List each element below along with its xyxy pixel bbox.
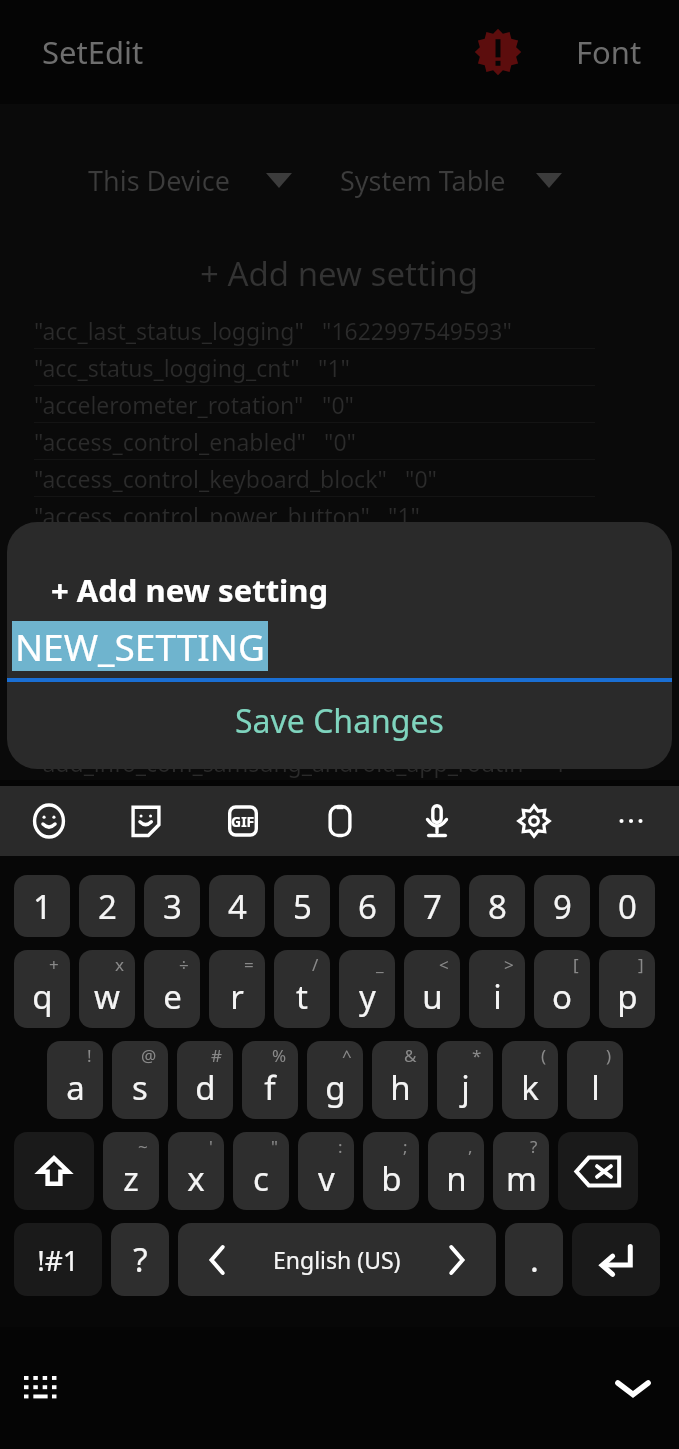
button[interactable]: % <box>242 1041 298 1119</box>
button[interactable]: ~ <box>103 1132 159 1210</box>
staticText: y <box>359 974 376 1019</box>
staticText: ' <box>209 1135 213 1158</box>
button[interactable]: # <box>177 1041 233 1119</box>
staticText: e <box>163 974 182 1019</box>
button[interactable]: Stickers <box>97 786 194 856</box>
button[interactable]: 5 <box>274 875 330 937</box>
button[interactable]: Shift <box>14 1132 94 1210</box>
staticText: > <box>504 953 514 976</box>
button[interactable]: = <box>209 950 265 1028</box>
staticText: "acc_last_status_logging" <box>34 315 304 346</box>
button[interactable]: 4 <box>209 875 265 937</box>
staticText: 1 <box>33 884 52 929</box>
button[interactable]: More options <box>582 786 679 856</box>
button[interactable]: @ <box>112 1041 168 1119</box>
staticText: r <box>230 974 244 1019</box>
button[interactable]: _ <box>339 950 395 1028</box>
staticText: h <box>390 1065 411 1110</box>
staticText: u <box>422 974 443 1019</box>
button[interactable]: 2 <box>79 875 135 937</box>
staticText: !#1 <box>37 1241 79 1279</box>
staticText: 6 <box>358 884 377 929</box>
button[interactable]: GIF <box>194 786 291 856</box>
button[interactable]: ' <box>168 1132 224 1210</box>
button[interactable]: Settings <box>485 786 582 856</box>
button[interactable]: 1 <box>14 875 70 937</box>
button[interactable]: , <box>428 1132 484 1210</box>
button[interactable]: Font <box>576 31 642 73</box>
button[interactable]: 7 <box>404 875 460 937</box>
staticText: "access_control_enabled" <box>34 426 306 457</box>
button[interactable]: + Add new setting <box>0 251 679 296</box>
button[interactable]: 3 <box>144 875 200 937</box>
button[interactable]: : <box>298 1132 354 1210</box>
button[interactable]: NEW_SETTING <box>7 621 672 671</box>
button[interactable]: "access_control_enabled" <box>0 423 679 460</box>
button[interactable]: "access_control_power_button" <box>0 497 679 534</box>
button[interactable]: This Device <box>88 162 292 199</box>
staticText: . <box>530 1237 539 1282</box>
staticText: ? <box>133 1237 148 1282</box>
staticText: 3 <box>163 884 182 929</box>
button[interactable]: ^ <box>307 1041 363 1119</box>
button[interactable]: [ <box>534 950 590 1028</box>
button[interactable]: Change keyboard <box>12 1358 72 1418</box>
button[interactable]: + Add new setting <box>51 569 329 611</box>
button[interactable]: Clipboard <box>291 786 388 856</box>
button[interactable]: . <box>505 1223 563 1296</box>
button[interactable]: Space <box>178 1223 496 1296</box>
staticText: System Table <box>340 162 506 199</box>
button[interactable]: ) <box>567 1041 623 1119</box>
button[interactable]: ! <box>47 1041 103 1119</box>
button[interactable]: "accelerometer_rotation" <box>0 386 679 423</box>
button[interactable]: * <box>437 1041 493 1119</box>
staticText: 5 <box>293 884 312 929</box>
button[interactable]: Hide keyboard <box>603 1358 663 1418</box>
staticText: "0" <box>405 463 437 494</box>
button[interactable]: & <box>372 1041 428 1119</box>
button[interactable]: Save Changes <box>7 682 672 769</box>
button[interactable]: !#1 <box>14 1223 102 1296</box>
staticText: 8 <box>488 884 507 929</box>
button[interactable]: "acc_status_logging_cnt" <box>0 349 679 386</box>
staticText: l <box>591 1065 600 1110</box>
button[interactable]: ? <box>111 1223 169 1296</box>
button[interactable]: " <box>233 1132 289 1210</box>
button[interactable]: 6 <box>339 875 395 937</box>
button[interactable]: SetEdit <box>42 31 144 73</box>
button[interactable]: > <box>469 950 525 1028</box>
button[interactable]: + <box>14 950 70 1028</box>
button[interactable]: ] <box>599 950 655 1028</box>
staticText: "0" <box>322 389 354 420</box>
staticText: _ <box>376 953 384 976</box>
button[interactable]: Enter <box>572 1223 660 1296</box>
staticText: ( <box>541 1044 547 1067</box>
staticText: ; <box>403 1135 408 1158</box>
button[interactable]: Backspace <box>558 1132 638 1210</box>
button[interactable]: "access_control_keyboard_block" <box>0 460 679 497</box>
staticText: c <box>253 1156 269 1201</box>
staticText: ) <box>606 1044 612 1067</box>
staticText: m <box>506 1156 537 1201</box>
staticText: f <box>264 1065 276 1110</box>
button[interactable]: Emoji <box>0 786 97 856</box>
button[interactable]: "add_info_com_samsung_android_app_routin <box>34 747 576 778</box>
button[interactable]: ; <box>363 1132 419 1210</box>
staticText: w <box>94 974 120 1019</box>
button[interactable]: ( <box>502 1041 558 1119</box>
button[interactable]: ÷ <box>144 950 200 1028</box>
staticText: @ <box>141 1044 157 1067</box>
button[interactable]: Voice input <box>388 786 485 856</box>
staticText: ! <box>87 1044 92 1067</box>
button[interactable]: / <box>274 950 330 1028</box>
button[interactable]: x <box>79 950 135 1028</box>
button[interactable]: < <box>404 950 460 1028</box>
staticText: "acc_status_logging_cnt" <box>34 352 300 383</box>
button[interactable]: 0 <box>599 875 655 937</box>
button[interactable]: Warning <box>469 23 527 81</box>
button[interactable]: 9 <box>534 875 590 937</box>
button[interactable]: ? <box>493 1132 549 1210</box>
button[interactable]: 8 <box>469 875 525 937</box>
button[interactable]: "acc_last_status_logging" <box>0 312 679 349</box>
button[interactable]: System Table <box>340 162 562 199</box>
